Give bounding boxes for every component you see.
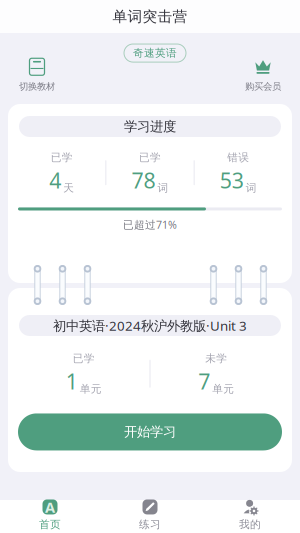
button[interactable]: 练习 [100,499,200,531]
staticText: 单词突击营 [112,7,187,25]
staticText: 7 [198,367,210,395]
button[interactable]: 购买会员 [232,59,294,91]
staticText: 已学 [51,151,73,164]
staticText: 天 [63,181,74,194]
button[interactable]: A [0,499,100,531]
staticText: 我的 [239,518,261,531]
staticText: A [45,497,55,517]
staticText: 词 [157,181,168,194]
staticText: 4 [49,166,61,194]
staticText: 首页 [39,518,61,531]
staticText: 单元 [212,382,234,395]
staticText: 未学 [205,352,227,365]
staticText: 奇速英语 [133,46,177,60]
staticText: 单元 [80,382,102,395]
button[interactable]: 切换教材 [6,59,68,91]
button[interactable]: 我的 [200,499,300,531]
staticText: 已超过71% [123,217,177,232]
staticText: 已学 [139,151,161,164]
staticText: 53 [220,166,244,194]
button[interactable]: 开始学习 [18,413,282,450]
staticText: 学习进度 [124,118,176,135]
staticText: 购买会员 [245,81,281,92]
staticText: 初中英语·2024秋沪外教版·Unit 3 [53,317,247,334]
staticText: 切换教材 [19,81,55,92]
staticText: 开始学习 [124,424,176,440]
staticText: 1 [66,367,78,395]
staticText: 练习 [139,518,161,531]
staticText: 78 [131,166,155,194]
staticText: 词 [246,181,257,194]
staticText: 已学 [73,352,95,365]
staticText: 错误 [227,151,249,164]
